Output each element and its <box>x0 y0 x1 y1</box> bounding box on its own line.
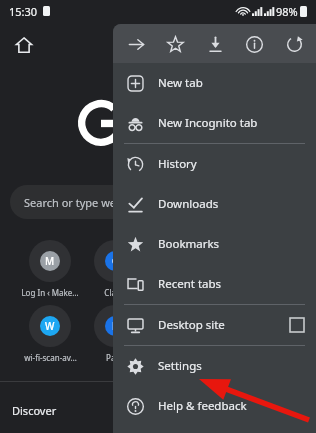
button[interactable]: New tab <box>113 63 316 103</box>
button[interactable]: Settings <box>113 346 316 386</box>
staticText: Help & feedback <box>158 398 247 414</box>
staticText: M <box>45 254 55 268</box>
button[interactable]: Bookmarks <box>113 224 316 264</box>
staticText: C <box>112 254 119 268</box>
button[interactable]: Search or type web address <box>10 185 210 219</box>
staticText: Claire <box>104 287 126 298</box>
button[interactable]: History <box>113 144 316 184</box>
staticText: Settings <box>158 358 202 374</box>
button[interactable]: Download <box>198 27 232 61</box>
staticText: Discover <box>12 403 57 418</box>
staticText: W <box>45 319 55 333</box>
staticText: Downloads <box>158 196 219 212</box>
staticText: 15:30 <box>9 4 38 19</box>
staticText: P <box>112 319 119 333</box>
button[interactable]: Desktop site <box>113 305 316 345</box>
staticText: wi-fi-scan-av… <box>24 352 77 363</box>
button[interactable]: P <box>86 305 144 363</box>
button[interactable]: Home <box>12 33 36 57</box>
staticText: 98% <box>276 4 298 19</box>
staticText: Log In ‹ Make… <box>21 287 79 298</box>
staticText: New tab <box>158 75 203 91</box>
staticText: Recent tabs <box>158 276 222 292</box>
staticText: Search or type web address <box>24 195 167 210</box>
staticText: Bookmarks <box>158 236 220 252</box>
staticText: Desktop site <box>158 317 225 333</box>
button[interactable]: Downloads <box>113 184 316 224</box>
button[interactable]: Reload <box>277 27 311 61</box>
button[interactable]: C <box>86 240 144 298</box>
staticText: History <box>158 156 197 172</box>
button[interactable]: W <box>21 305 79 363</box>
staticText: Page <box>106 352 125 363</box>
button[interactable]: Recent tabs <box>113 264 316 304</box>
button[interactable]: Page info <box>237 27 271 61</box>
button[interactable]: New Incognito tab <box>113 103 316 143</box>
button[interactable]: Forward <box>119 27 153 61</box>
staticText: New Incognito tab <box>158 115 258 131</box>
button[interactable]: M <box>21 240 79 298</box>
button[interactable]: Help & feedback <box>113 386 316 426</box>
button[interactable]: Bookmark <box>158 27 192 61</box>
